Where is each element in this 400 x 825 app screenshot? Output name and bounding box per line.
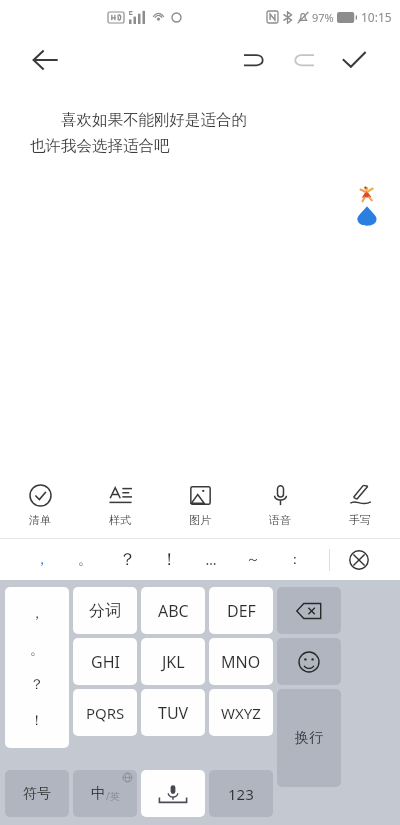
staticText: WXYZ	[221, 703, 261, 723]
button[interactable]: 符号	[5, 770, 69, 817]
staticText: ？	[119, 549, 136, 570]
button[interactable]: ～	[232, 539, 274, 580]
staticText: JKL	[162, 651, 185, 673]
staticText: 中	[91, 784, 106, 803]
button[interactable]: 分词	[73, 587, 137, 634]
staticText: ，	[35, 551, 49, 569]
staticText: 喜欢如果不能刚好是适合的	[30, 108, 247, 129]
button[interactable]: Emoji	[277, 638, 341, 685]
button[interactable]: Redo	[282, 38, 326, 82]
button[interactable]: MNO	[209, 638, 273, 685]
staticText: 也许我会选择适合吧	[30, 136, 170, 156]
button[interactable]: 语音	[240, 472, 320, 538]
staticText: ！	[30, 712, 44, 730]
button[interactable]: ，	[5, 587, 69, 748]
button[interactable]: 样式	[80, 472, 160, 538]
button[interactable]: PQRS	[73, 689, 137, 736]
button[interactable]: Done	[332, 38, 376, 82]
button[interactable]: …	[190, 539, 232, 580]
button[interactable]: 。	[63, 539, 106, 580]
staticText: 符号	[23, 785, 51, 803]
staticText: 语音	[269, 513, 291, 527]
button[interactable]: 图片	[160, 472, 240, 538]
button[interactable]: Back	[22, 37, 68, 83]
staticText: 123	[228, 784, 254, 804]
staticText: PQRS	[86, 703, 125, 723]
staticText: TUV	[158, 702, 189, 724]
button[interactable]: Undo	[232, 38, 276, 82]
button[interactable]: ：	[274, 539, 316, 580]
button[interactable]: 手写	[320, 472, 400, 538]
staticText: …	[205, 550, 217, 569]
staticText: 97%	[312, 10, 334, 25]
staticText: 换行	[295, 729, 323, 747]
staticText: ABC	[158, 600, 189, 622]
staticText: ！	[161, 549, 178, 570]
button[interactable]: JKL	[141, 638, 205, 685]
button[interactable]: WXYZ	[209, 689, 273, 736]
staticText: ，	[30, 605, 44, 623]
button[interactable]: ？	[106, 539, 148, 580]
button[interactable]: Close keyboard	[340, 541, 378, 579]
staticText: 清单	[29, 513, 51, 527]
button[interactable]: Backspace	[277, 587, 341, 634]
button[interactable]: 123	[209, 770, 273, 817]
button[interactable]: TUV	[141, 689, 205, 736]
staticText: GHI	[91, 651, 120, 673]
staticText: 10:15	[361, 9, 392, 25]
staticText: ～	[246, 551, 260, 569]
button[interactable]: ，	[20, 539, 63, 580]
staticText: /英	[106, 789, 120, 803]
staticText: ：	[288, 551, 302, 569]
button[interactable]: ！	[148, 539, 190, 580]
staticText: 。	[30, 641, 44, 659]
staticText: 样式	[109, 513, 131, 527]
staticText: 分词	[89, 601, 121, 621]
staticText: ？	[30, 676, 44, 694]
staticText: MNO	[221, 651, 261, 673]
staticText: 手写	[349, 513, 371, 527]
button[interactable]: 中	[73, 770, 137, 817]
button[interactable]: Voice input	[141, 770, 205, 817]
staticText: 。	[78, 551, 92, 569]
button[interactable]: DEF	[209, 587, 273, 634]
button[interactable]: ABC	[141, 587, 205, 634]
staticText: DEF	[227, 600, 256, 622]
button[interactable]: GHI	[73, 638, 137, 685]
staticText: 图片	[189, 513, 211, 527]
button[interactable]: 清单	[0, 472, 80, 538]
button[interactable]: 换行	[277, 689, 341, 787]
